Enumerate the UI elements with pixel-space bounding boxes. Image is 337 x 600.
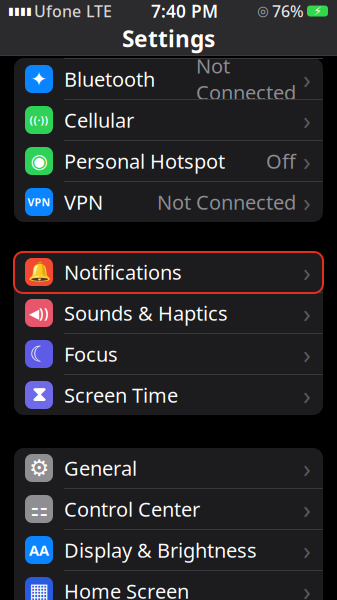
staticText: ((·)): [29, 113, 48, 127]
staticText: Home Screen: [64, 578, 189, 600]
button[interactable]: VPN: [14, 182, 323, 222]
staticText: 7:40 PM: [151, 0, 218, 22]
staticText: Screen Time: [64, 382, 178, 408]
staticText: ›: [303, 533, 311, 567]
staticText: VPN: [27, 195, 50, 209]
staticText: ›: [303, 255, 311, 289]
staticText: ☾: [29, 342, 48, 366]
staticText: ›: [303, 574, 311, 600]
staticText: ⧗: [32, 385, 46, 405]
staticText: ⚡︎: [313, 4, 321, 18]
staticText: ⚙: [29, 455, 49, 481]
button[interactable]: ((·)): [14, 100, 323, 141]
button[interactable]: ⚙: [14, 448, 323, 489]
staticText: ✦: [30, 68, 47, 90]
staticText: 🔔: [27, 261, 50, 283]
button[interactable]: ◀)): [14, 293, 323, 334]
staticText: VPN: [64, 189, 103, 215]
button[interactable]: ◉: [14, 141, 323, 182]
button[interactable]: ☾: [14, 334, 323, 375]
staticText: ›: [303, 185, 311, 219]
staticText: ◎: [257, 3, 269, 18]
staticText: ›: [303, 103, 311, 137]
staticText: 76%: [272, 0, 304, 22]
staticText: ▮▮▮▮: [8, 5, 32, 17]
staticText: ›: [303, 62, 311, 96]
staticText: Settings: [122, 23, 215, 53]
staticText: ›: [303, 378, 311, 412]
staticText: General: [64, 455, 137, 481]
staticText: ▦: [29, 579, 49, 600]
staticText: ›: [303, 492, 311, 526]
staticText: Off: [266, 148, 296, 174]
staticText: ◀)): [29, 304, 49, 322]
staticText: Personal Hotspot: [64, 148, 225, 174]
staticText: ›: [303, 337, 311, 371]
staticText: Focus: [64, 341, 118, 367]
staticText: ›: [303, 144, 311, 178]
staticText: Control Center: [64, 496, 200, 522]
staticText: Not Connected: [157, 189, 296, 215]
staticText: ⚏: [30, 498, 48, 520]
button[interactable]: ▦: [14, 571, 323, 600]
button[interactable]: ⚏: [14, 489, 323, 530]
staticText: Cellular: [64, 107, 134, 133]
staticText: LTE: [86, 0, 112, 22]
staticText: Display & Brightness: [64, 537, 257, 563]
button[interactable]: ✦: [14, 59, 323, 100]
staticText: AA: [29, 540, 49, 560]
staticText: ◉: [30, 150, 47, 172]
button[interactable]: ⧗: [14, 375, 323, 415]
staticText: Bluetooth: [64, 66, 155, 92]
staticText: Ufone: [34, 0, 81, 22]
staticText: ›: [303, 296, 311, 330]
staticText: ›: [303, 451, 311, 485]
button[interactable]: 🔔: [14, 252, 323, 293]
staticText: Notifications: [64, 259, 182, 285]
staticText: Not Connected: [196, 52, 296, 105]
staticText: Sounds & Haptics: [64, 300, 228, 326]
button[interactable]: AA: [14, 530, 323, 571]
